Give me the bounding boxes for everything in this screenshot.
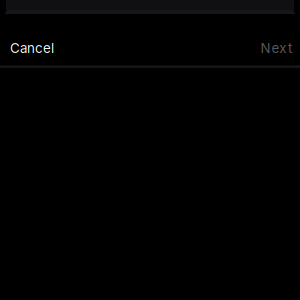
staticText: Next	[261, 40, 292, 56]
button[interactable]: Cancel	[0, 26, 64, 65]
staticText: Cancel	[10, 40, 54, 56]
button[interactable]: Next	[252, 26, 300, 65]
